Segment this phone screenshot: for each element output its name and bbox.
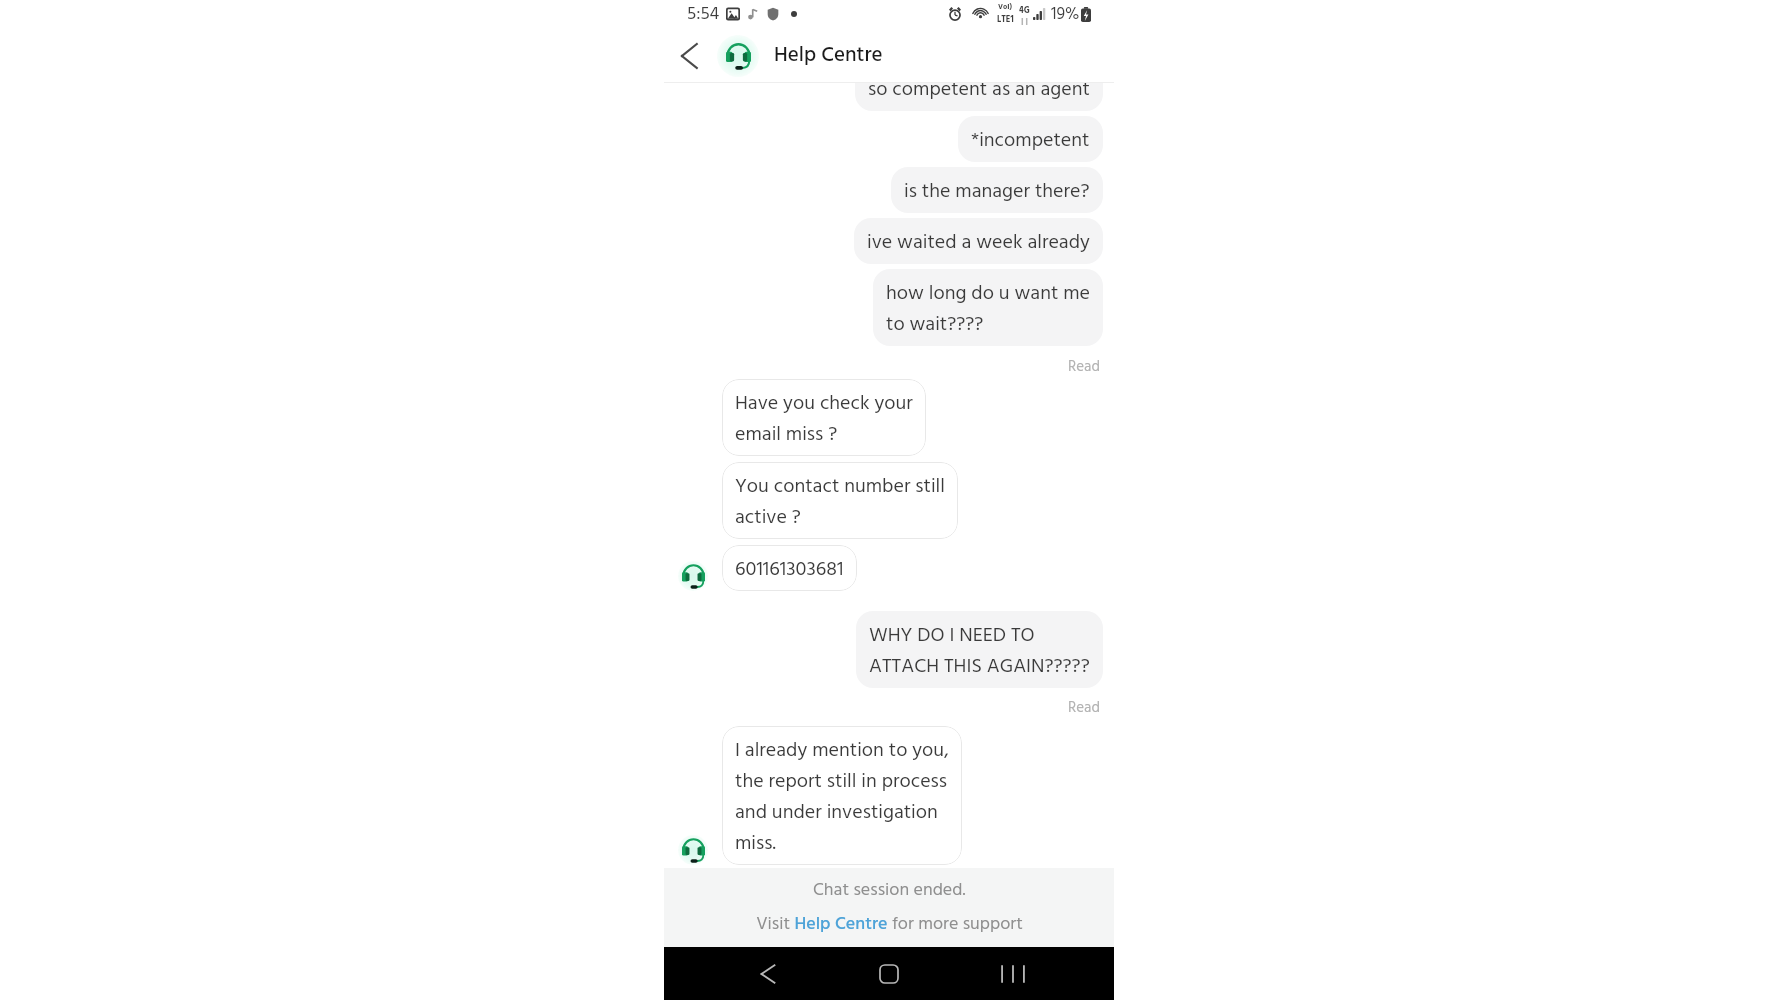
staticText: VoI) <box>998 1 1013 13</box>
staticText: Visit Help Centre for more support <box>756 910 1023 939</box>
staticText: is the manager there? <box>904 176 1090 208</box>
button[interactable]: ive waited a week already <box>854 218 1103 264</box>
staticText: Chat session ended. <box>813 876 966 905</box>
button[interactable]: You contact number still active ? <box>722 462 958 539</box>
staticText: so competent as an agent <box>868 83 1090 106</box>
staticText: You contact number still active ? <box>735 471 945 534</box>
button[interactable]: so competent as an agent <box>855 83 1103 111</box>
button[interactable]: Home <box>866 951 912 997</box>
button[interactable]: is the manager there? <box>891 167 1103 213</box>
button[interactable]: *incompetent <box>958 116 1103 162</box>
staticText: Read <box>1068 355 1100 379</box>
staticText: Have you check your email miss ? <box>735 388 913 451</box>
staticText: I already mention to you, the report sti… <box>735 735 949 860</box>
button[interactable]: I already mention to you, the report sti… <box>722 726 962 865</box>
button[interactable]: Back <box>744 951 790 997</box>
staticText: ive waited a week already <box>867 227 1090 259</box>
button[interactable]: Recent apps <box>990 951 1036 997</box>
button[interactable]: Have you check your email miss ? <box>722 379 926 456</box>
button[interactable]: 601161303681 <box>722 545 857 591</box>
staticText: 5:54 <box>687 0 720 28</box>
staticText: WHY DO I NEED TO ATTACH THIS AGAIN????? <box>869 620 1090 683</box>
staticText: *incompetent <box>971 125 1090 157</box>
staticText: how long do u want me to wait???? <box>886 278 1090 341</box>
staticText: 4G <box>1019 4 1030 18</box>
staticText: Help Centre <box>774 39 883 73</box>
staticText: LTE1 <box>997 13 1014 27</box>
button[interactable]: how long do u want me to wait???? <box>873 269 1103 346</box>
staticText: 601161303681 <box>735 554 844 586</box>
button[interactable]: WHY DO I NEED TO ATTACH THIS AGAIN????? <box>856 611 1103 688</box>
staticText: 19% <box>1051 1 1080 28</box>
staticText: Read <box>1068 696 1100 720</box>
button[interactable]: Back <box>677 40 709 72</box>
